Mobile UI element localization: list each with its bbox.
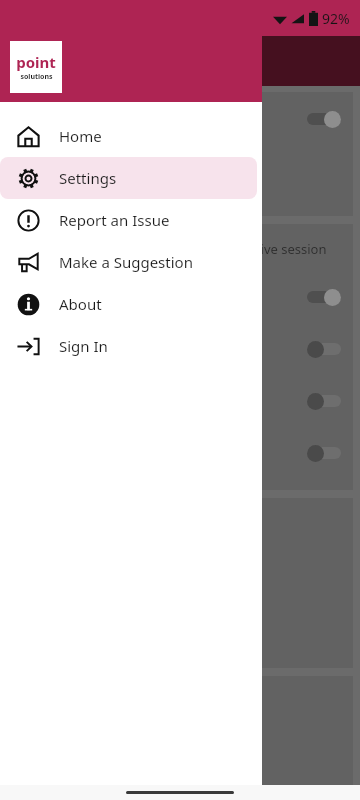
button[interactable] [307,392,341,410]
staticText: 92% [322,9,350,28]
button[interactable]: Report an Issue [0,199,257,241]
button[interactable] [307,340,341,358]
button[interactable] [307,288,341,306]
button[interactable]: Home [0,115,257,157]
staticText: solutions [20,72,53,82]
button[interactable] [307,444,341,462]
staticText: Receive notifications for questions in a… [19,240,327,258]
staticText: point [16,52,56,72]
staticText: About [59,294,102,314]
staticText: Report an Issue [59,210,170,230]
button[interactable]: Make a Suggestion [0,241,257,283]
staticText: Home [59,126,102,146]
button[interactable]: Sign In [0,325,257,367]
button[interactable] [307,110,341,128]
staticText: Make a Suggestion [59,252,193,272]
staticText: Sign In [59,336,108,356]
staticText: Allow the app to use this device's locat… [19,110,257,146]
button[interactable]: point [10,41,62,93]
staticText: Settings [59,168,117,188]
button[interactable]: Settings [0,157,257,199]
button[interactable]: About [0,283,257,325]
